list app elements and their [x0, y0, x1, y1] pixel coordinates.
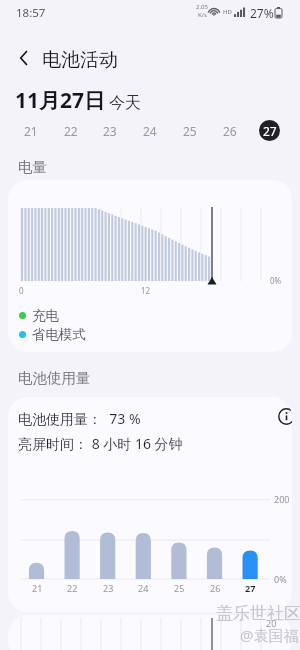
button[interactable]: 22 [60, 120, 81, 141]
staticText: K/s [198, 11, 207, 19]
staticText: 电量 [18, 158, 47, 176]
button[interactable]: 21 [20, 120, 41, 141]
staticText: 26 [210, 582, 221, 594]
staticText: HD [223, 8, 232, 16]
staticText: 27% [250, 5, 274, 21]
staticText: 18:57 [16, 5, 46, 21]
staticText: 24 [138, 582, 149, 594]
button[interactable]: 24 [139, 120, 160, 141]
staticText: 12 [141, 285, 151, 296]
staticText: 21 [24, 123, 38, 139]
staticText: 20 [266, 617, 277, 629]
staticText: 27 [263, 123, 277, 139]
button[interactable]: 23 [99, 120, 120, 141]
staticText: 25 [183, 123, 197, 139]
staticText: 26 [223, 123, 237, 139]
staticText: 0 [19, 285, 24, 296]
staticText: 盖乐世社区 [216, 603, 300, 624]
staticText: 电池活动 [42, 48, 118, 72]
staticText: 电池使用量 [18, 369, 91, 387]
staticText: 充电 [32, 307, 59, 324]
staticText: 23 [103, 123, 117, 139]
staticText: 21 [32, 582, 43, 594]
staticText: 22 [67, 582, 78, 594]
staticText: 0% [274, 573, 287, 585]
staticText: 0% [270, 275, 282, 286]
staticText: @袁国福 [240, 625, 299, 645]
staticText: 22 [64, 123, 78, 139]
staticText: 电池使用量： 73 % [18, 409, 141, 428]
staticText: 今天 [109, 93, 141, 113]
staticText: 2.05 [196, 3, 208, 11]
staticText: 亮屏时间： 8 小时 16 分钟 [18, 434, 183, 453]
staticText: 11月27日 [15, 86, 106, 115]
button[interactable]: 26 [219, 120, 240, 141]
staticText: 23 [103, 582, 114, 594]
staticText: 省电模式 [32, 326, 86, 343]
staticText: 27 [245, 582, 256, 594]
staticText: 25 [174, 582, 185, 594]
button[interactable]: 25 [179, 120, 200, 141]
staticText: 24 [143, 123, 157, 139]
button[interactable]: Info [276, 406, 292, 426]
button[interactable]: 27 [259, 120, 280, 141]
staticText: 200 [274, 493, 290, 505]
button[interactable]: Back [10, 44, 38, 72]
